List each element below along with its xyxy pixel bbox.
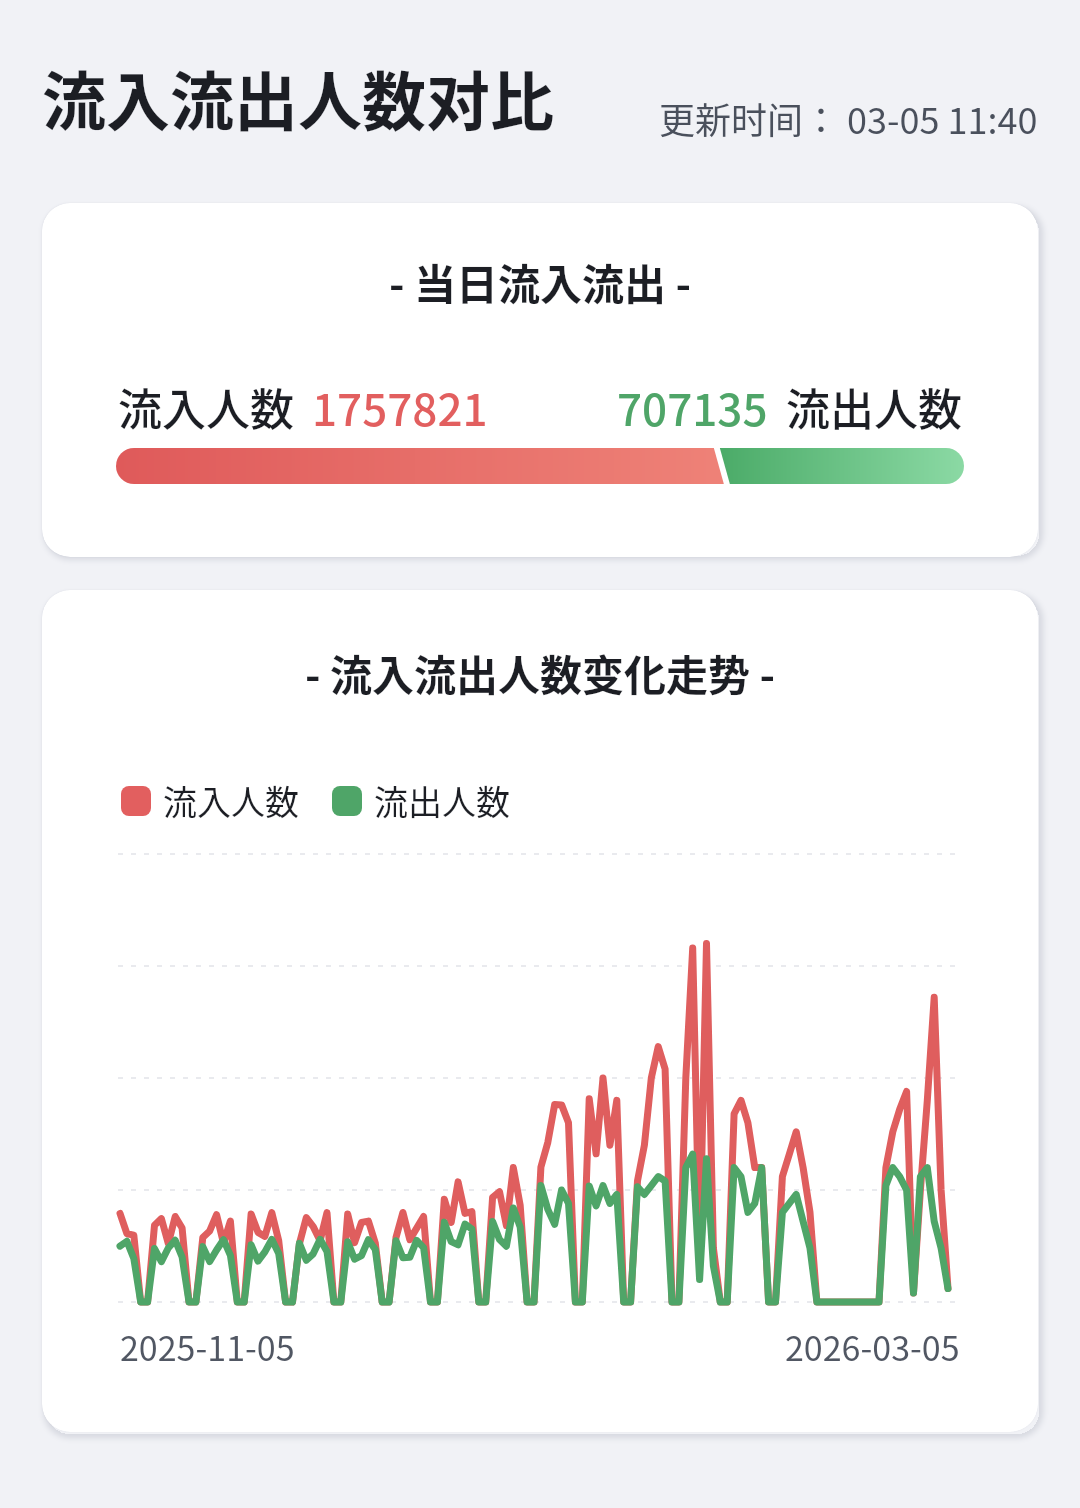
- button[interactable]: - 当日流入流出 -: [42, 203, 1038, 557]
- staticText: 流入人数: [163, 776, 299, 825]
- staticText: - 流入流出人数变化走势 -: [305, 642, 776, 703]
- staticText: - 当日流入流出 -: [389, 251, 692, 312]
- staticText: 1757821: [312, 375, 488, 439]
- staticText: 流入流出人数对比: [42, 51, 554, 144]
- staticText: 707135: [617, 375, 768, 439]
- staticText: 流出人数: [786, 375, 962, 439]
- staticText: 更新时间： 03-05 11:40: [659, 92, 1038, 144]
- staticText: 2026-03-05: [785, 1322, 960, 1371]
- staticText: 2025-11-05: [120, 1322, 295, 1371]
- staticText: 流入人数: [118, 375, 294, 439]
- staticText: 流出人数: [374, 776, 510, 825]
- button[interactable]: - 流入流出人数变化走势 -: [42, 590, 1038, 1432]
